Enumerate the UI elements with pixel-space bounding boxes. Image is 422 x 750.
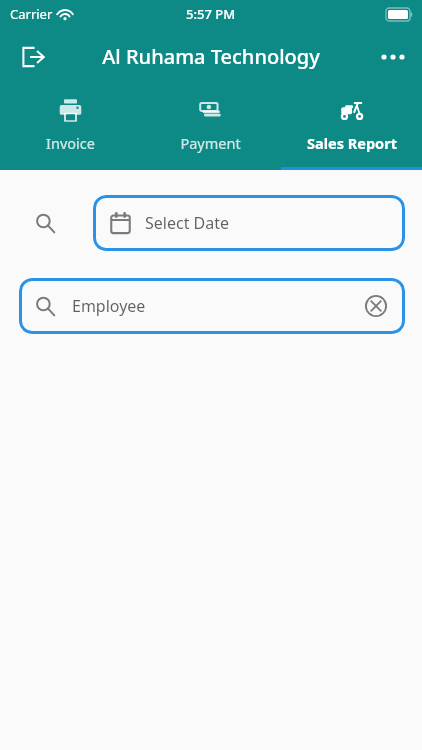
button[interactable]: Invoice bbox=[0, 85, 140, 170]
button[interactable]: Sales Report bbox=[281, 85, 422, 170]
button[interactable]: Payment bbox=[140, 85, 281, 170]
staticText: Al Ruhama Technology bbox=[102, 43, 320, 70]
button[interactable]: Select Date bbox=[93, 195, 405, 251]
button[interactable]: Search bbox=[22, 200, 68, 246]
staticText: Select Date bbox=[145, 212, 230, 234]
staticText: Sales Report bbox=[307, 133, 397, 153]
button[interactable]: Clear bbox=[361, 291, 391, 321]
staticText: 5:57 PM bbox=[186, 5, 236, 23]
staticText: Payment bbox=[180, 133, 241, 153]
button[interactable]: More options bbox=[371, 35, 415, 79]
staticText: Invoice bbox=[46, 133, 95, 153]
button[interactable]: Employee bbox=[19, 278, 405, 334]
button[interactable]: Log out bbox=[9, 33, 57, 81]
staticText: Carrier bbox=[10, 5, 53, 23]
staticText: Employee bbox=[72, 295, 361, 317]
